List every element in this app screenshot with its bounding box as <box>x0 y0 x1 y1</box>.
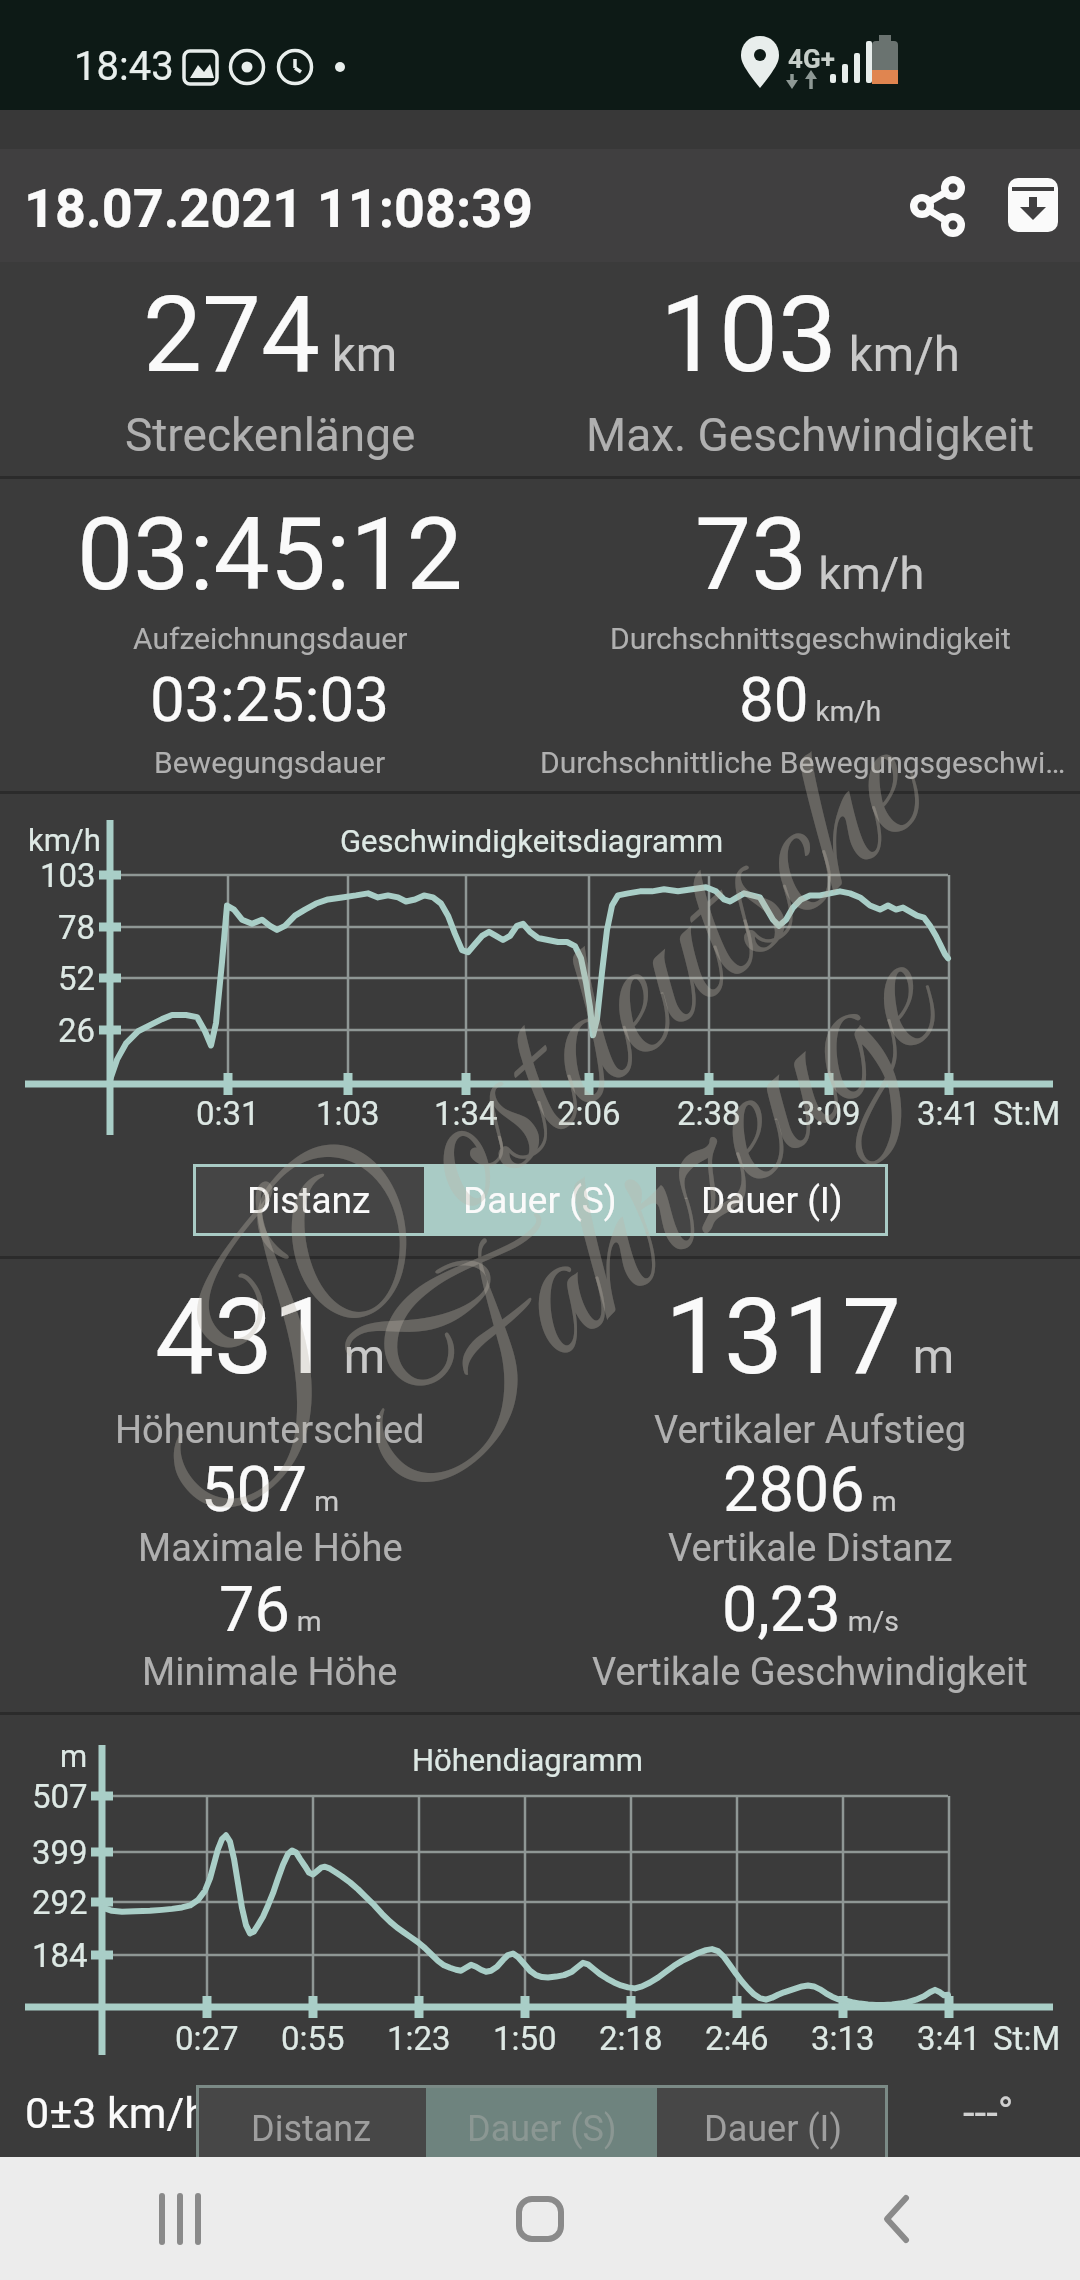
staticText: 184 <box>32 1936 88 1975</box>
staticText: St:M <box>993 1094 1061 1133</box>
staticText: 507 <box>32 1777 88 1816</box>
staticText: Vertikale Geschwindigkeit <box>592 1650 1028 1695</box>
staticText: 507 m <box>201 1453 340 1527</box>
button[interactable] <box>0 2157 360 2280</box>
staticText: 73 km/h <box>695 496 925 613</box>
staticText: 2:46 <box>705 2019 769 2058</box>
staticText: km/h <box>28 822 101 858</box>
staticText: 80 km/h <box>739 663 882 736</box>
staticText: Max. Geschwindigkeit <box>586 408 1035 462</box>
staticText: 0,23 m/s <box>722 1573 899 1647</box>
staticText: St:M <box>993 2019 1061 2058</box>
staticText: 03:25:03 <box>150 663 390 736</box>
staticText: 3:13 <box>811 2019 875 2058</box>
staticText: Fahrzeuge <box>295 895 995 1554</box>
staticText: 26 <box>58 1011 96 1050</box>
staticText: Dauer (S) <box>463 1179 617 1222</box>
staticText: Dauer (I) <box>704 2108 842 2150</box>
staticText: 0:55 <box>281 2019 345 2058</box>
staticText: Bewegungsdauer <box>154 745 386 780</box>
staticText: Geschwindigkeitsdiagramm <box>340 823 724 859</box>
staticText: 292 <box>32 1883 88 1922</box>
staticText: Maximale Höhe <box>138 1526 403 1571</box>
staticText: 431 m <box>155 1276 386 1399</box>
staticText: Distanz <box>251 2108 372 2150</box>
staticText: 78 <box>58 908 96 947</box>
staticText: 3:41 <box>917 1094 981 1133</box>
staticText: Höhendiagramm <box>412 1742 643 1778</box>
staticText: 0±3 km/h <box>25 2088 208 2138</box>
staticText: Vertikale Distanz <box>668 1526 953 1571</box>
staticText: m <box>60 1738 88 1774</box>
staticText: Durchschnittliche Bewegungsgeschwind... <box>540 745 1080 780</box>
button[interactable] <box>900 160 976 236</box>
staticText: 0:31 <box>196 1094 260 1133</box>
staticText: Dauer (I) <box>701 1179 843 1222</box>
button[interactable]: Dauer (S) <box>426 2085 657 2172</box>
staticText: 1317 m <box>665 1276 955 1399</box>
staticText: 2806 m <box>723 1453 897 1527</box>
button[interactable]: Dauer (I) <box>656 1164 888 1236</box>
button[interactable]: Dauer (I) <box>657 2085 888 2172</box>
staticText: Aufzeichnungsdauer <box>133 621 408 656</box>
staticText: 3:41 <box>917 2019 981 2058</box>
staticText: 103 km/h <box>660 274 960 397</box>
staticText: 1:50 <box>493 2019 557 2058</box>
staticText: JQ ostdeutsche <box>71 683 980 1526</box>
staticText: 399 <box>32 1833 88 1872</box>
staticText: ---° <box>963 2088 1014 2137</box>
staticText: Minimale Höhe <box>142 1650 398 1695</box>
button[interactable] <box>720 2157 1080 2280</box>
staticText: Höhenunterschied <box>115 1408 425 1453</box>
staticText: Streckenlänge <box>125 408 416 462</box>
staticText: 2:06 <box>557 1094 621 1133</box>
button[interactable]: Distanz <box>196 2085 426 2172</box>
staticText: 1:34 <box>434 1094 498 1133</box>
button[interactable]: Dauer (S) <box>424 1164 656 1236</box>
staticText: 2:38 <box>677 1094 741 1133</box>
staticText: 18.07.2021 11:08:39 <box>24 177 534 240</box>
staticText: 03:45:12 <box>77 496 463 613</box>
button[interactable] <box>996 160 1072 236</box>
staticText: 18:43 <box>74 43 174 90</box>
staticText: Durchschnittsgeschwindigkeit <box>610 621 1011 656</box>
button[interactable] <box>360 2157 720 2280</box>
staticText: 1:03 <box>316 1094 380 1133</box>
staticText: 2:18 <box>599 2019 663 2058</box>
staticText: 1:23 <box>387 2019 451 2058</box>
staticText: 76 m <box>219 1573 322 1647</box>
staticText: Distanz <box>247 1179 371 1222</box>
staticText: 103 <box>40 856 96 895</box>
staticText: 52 <box>58 959 96 998</box>
staticText: Dauer (S) <box>467 2108 617 2150</box>
staticText: 4G+ <box>788 44 835 74</box>
staticText: 3:09 <box>797 1094 861 1133</box>
staticText: 0:27 <box>175 2019 239 2058</box>
staticText: 274 km <box>143 274 398 397</box>
button[interactable]: Distanz <box>193 1164 424 1236</box>
staticText: Vertikaler Aufstieg <box>654 1408 967 1453</box>
